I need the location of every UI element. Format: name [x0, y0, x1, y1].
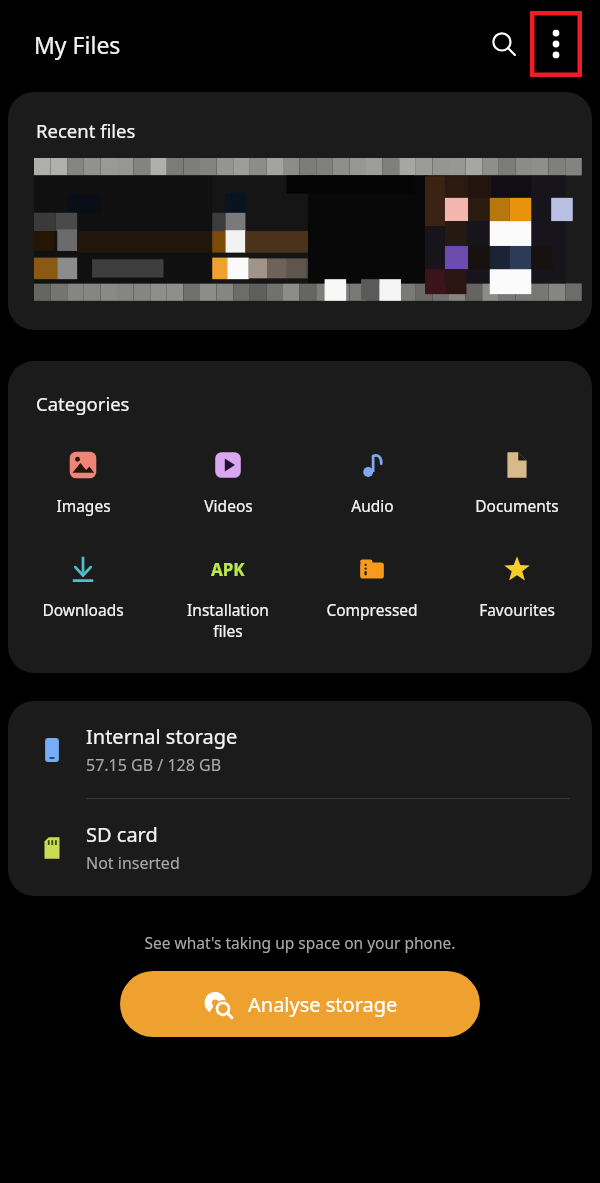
button[interactable]: Videos	[159, 446, 297, 518]
staticText: files	[213, 620, 243, 641]
button[interactable]: Recent files	[8, 92, 592, 330]
button[interactable]: Documents	[448, 446, 586, 518]
staticText: Installation	[187, 599, 269, 620]
staticText: Videos	[204, 495, 253, 516]
staticText: Recent files	[36, 118, 136, 143]
staticText: Categories	[36, 391, 130, 416]
button[interactable]: SD card	[8, 799, 592, 896]
staticText: Compressed	[326, 599, 418, 620]
button[interactable]: Internal storage	[8, 701, 592, 798]
button[interactable]: Favourites	[448, 550, 586, 622]
button[interactable]: More options	[530, 11, 582, 77]
staticText: Audio	[351, 495, 394, 516]
button[interactable]: Search	[478, 18, 530, 70]
staticText: Images	[56, 495, 111, 516]
staticText: Analyse storage	[248, 991, 398, 1018]
button[interactable]: Analyse storage	[120, 971, 480, 1037]
staticText: SD card	[86, 821, 158, 848]
staticText: My Files	[34, 29, 121, 60]
button[interactable]: APK	[159, 550, 297, 643]
staticText: See what's taking up space on your phone…	[0, 932, 600, 953]
button[interactable]: Compressed	[303, 550, 441, 622]
staticText: Favourites	[479, 599, 555, 620]
button[interactable]: Downloads	[14, 550, 152, 622]
staticText: Documents	[475, 495, 559, 516]
staticText: Internal storage	[86, 723, 238, 750]
staticText: APK	[211, 558, 245, 581]
button[interactable]: Images	[14, 446, 152, 518]
button[interactable]: Audio	[303, 446, 441, 518]
staticText: Not inserted	[86, 852, 180, 874]
staticText: 57.15 GB / 128 GB	[86, 754, 222, 776]
staticText: Downloads	[42, 599, 124, 620]
